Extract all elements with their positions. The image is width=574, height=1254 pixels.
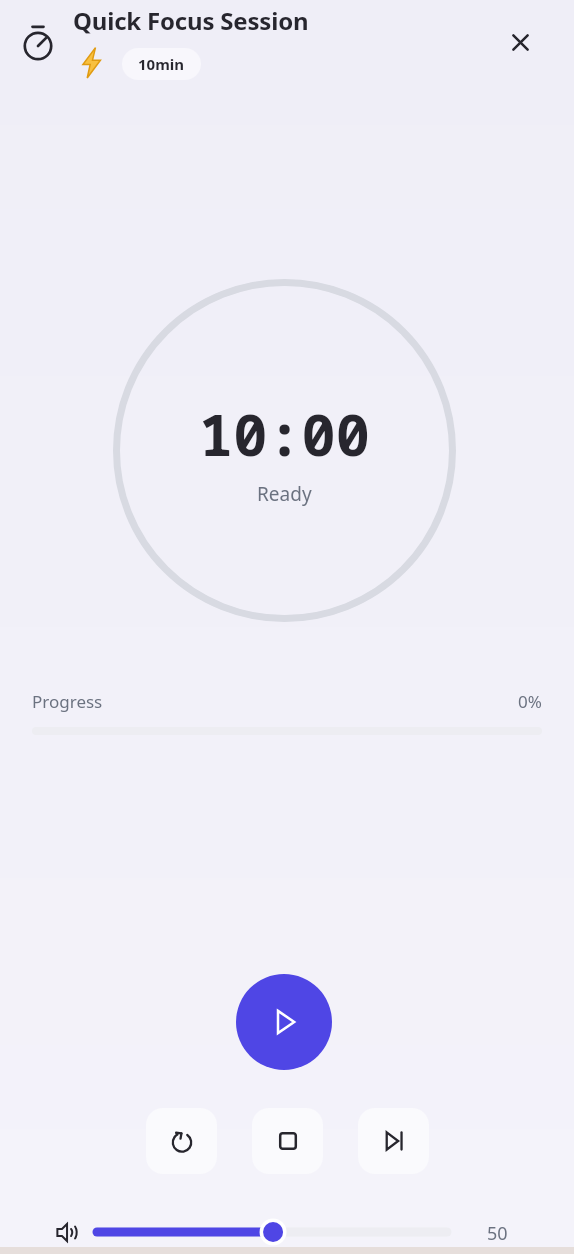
button[interactable]: 10min [122, 48, 201, 80]
button[interactable]: Close [497, 19, 543, 65]
button[interactable]: Skip [358, 1108, 429, 1174]
button[interactable]: Volume [46, 1211, 88, 1253]
staticText: 0% [518, 690, 542, 713]
staticText: Quick Focus Session [73, 4, 309, 37]
button[interactable]: Start [236, 974, 332, 1070]
staticText: 50 [487, 1221, 508, 1246]
button[interactable]: Timer [16, 21, 60, 65]
button[interactable]: Reset [146, 1108, 217, 1174]
staticText: 10:00 [199, 395, 370, 473]
staticText: 10min [138, 54, 185, 74]
button[interactable]: Volume slider [97, 1216, 447, 1248]
staticText: Ready [257, 481, 312, 507]
button[interactable]: Stop [252, 1108, 323, 1174]
staticText: Progress [32, 690, 103, 713]
